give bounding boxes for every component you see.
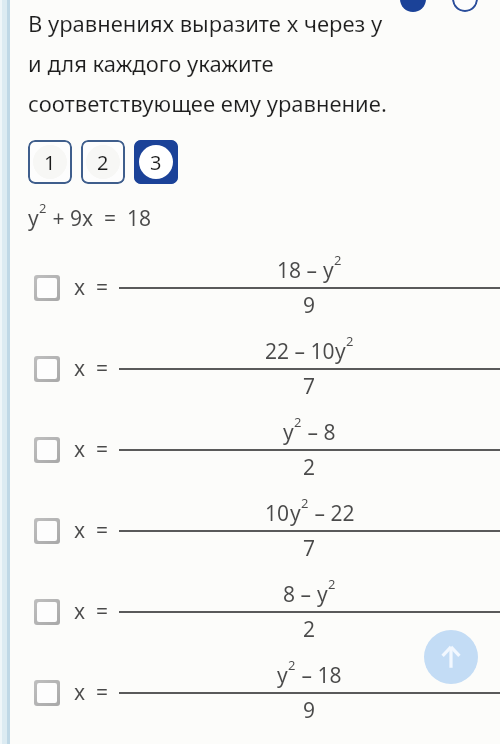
button[interactable]: x = (0, 490, 500, 571)
staticText: 1 (44, 149, 56, 176)
staticText: 22 – 10 (265, 337, 335, 366)
staticText: 9 (303, 291, 316, 320)
staticText: x = (74, 435, 109, 464)
staticText: – 18 (296, 661, 342, 690)
button[interactable]: 3 (134, 140, 178, 184)
staticText: y (335, 337, 346, 366)
staticText: 2 (294, 413, 302, 431)
staticText: + 9x = 18 (47, 204, 151, 233)
staticText: y (28, 204, 39, 233)
staticText: – 8 (302, 418, 336, 447)
staticText: 2 (97, 149, 109, 176)
button[interactable]: Scroll to top (424, 630, 478, 684)
staticText: y (283, 418, 294, 447)
button[interactable]: 2 (81, 140, 125, 184)
staticText: 2 (303, 615, 316, 644)
staticText: 2 (288, 656, 296, 674)
staticText: 2 (334, 251, 342, 269)
staticText: 2 (303, 453, 316, 482)
button[interactable]: x = (0, 247, 500, 328)
button[interactable]: x = (0, 409, 500, 490)
button[interactable]: x = (0, 571, 500, 652)
staticText: 7 (303, 372, 316, 401)
staticText: и для каждого укажите (28, 48, 274, 78)
staticText: В уравнениях выразите x через y (28, 8, 383, 38)
staticText: y (290, 499, 301, 528)
staticText: 2 (346, 332, 354, 350)
staticText: x = (74, 678, 109, 707)
staticText: 18 – (277, 256, 323, 285)
staticText: x = (74, 597, 109, 626)
button[interactable]: x = (0, 652, 500, 733)
staticText: y (323, 256, 334, 285)
button[interactable]: x = (0, 328, 500, 409)
staticText: y (317, 580, 328, 609)
staticText: 2 (301, 494, 309, 512)
staticText: 2 (328, 575, 336, 593)
staticText: 10 (265, 499, 290, 528)
staticText: 9 (303, 696, 316, 725)
staticText: соответствующее ему уравнение. (28, 88, 387, 118)
staticText: x = (74, 516, 109, 545)
staticText: 2 (39, 199, 47, 217)
button[interactable]: 1 (28, 140, 72, 184)
staticText: x = (74, 354, 109, 383)
staticText: 7 (303, 534, 316, 563)
staticText: x = (74, 273, 109, 302)
staticText: – 22 (309, 499, 355, 528)
staticText: 8 – (283, 580, 317, 609)
staticText: y (277, 661, 288, 690)
staticText: 3 (150, 149, 162, 176)
